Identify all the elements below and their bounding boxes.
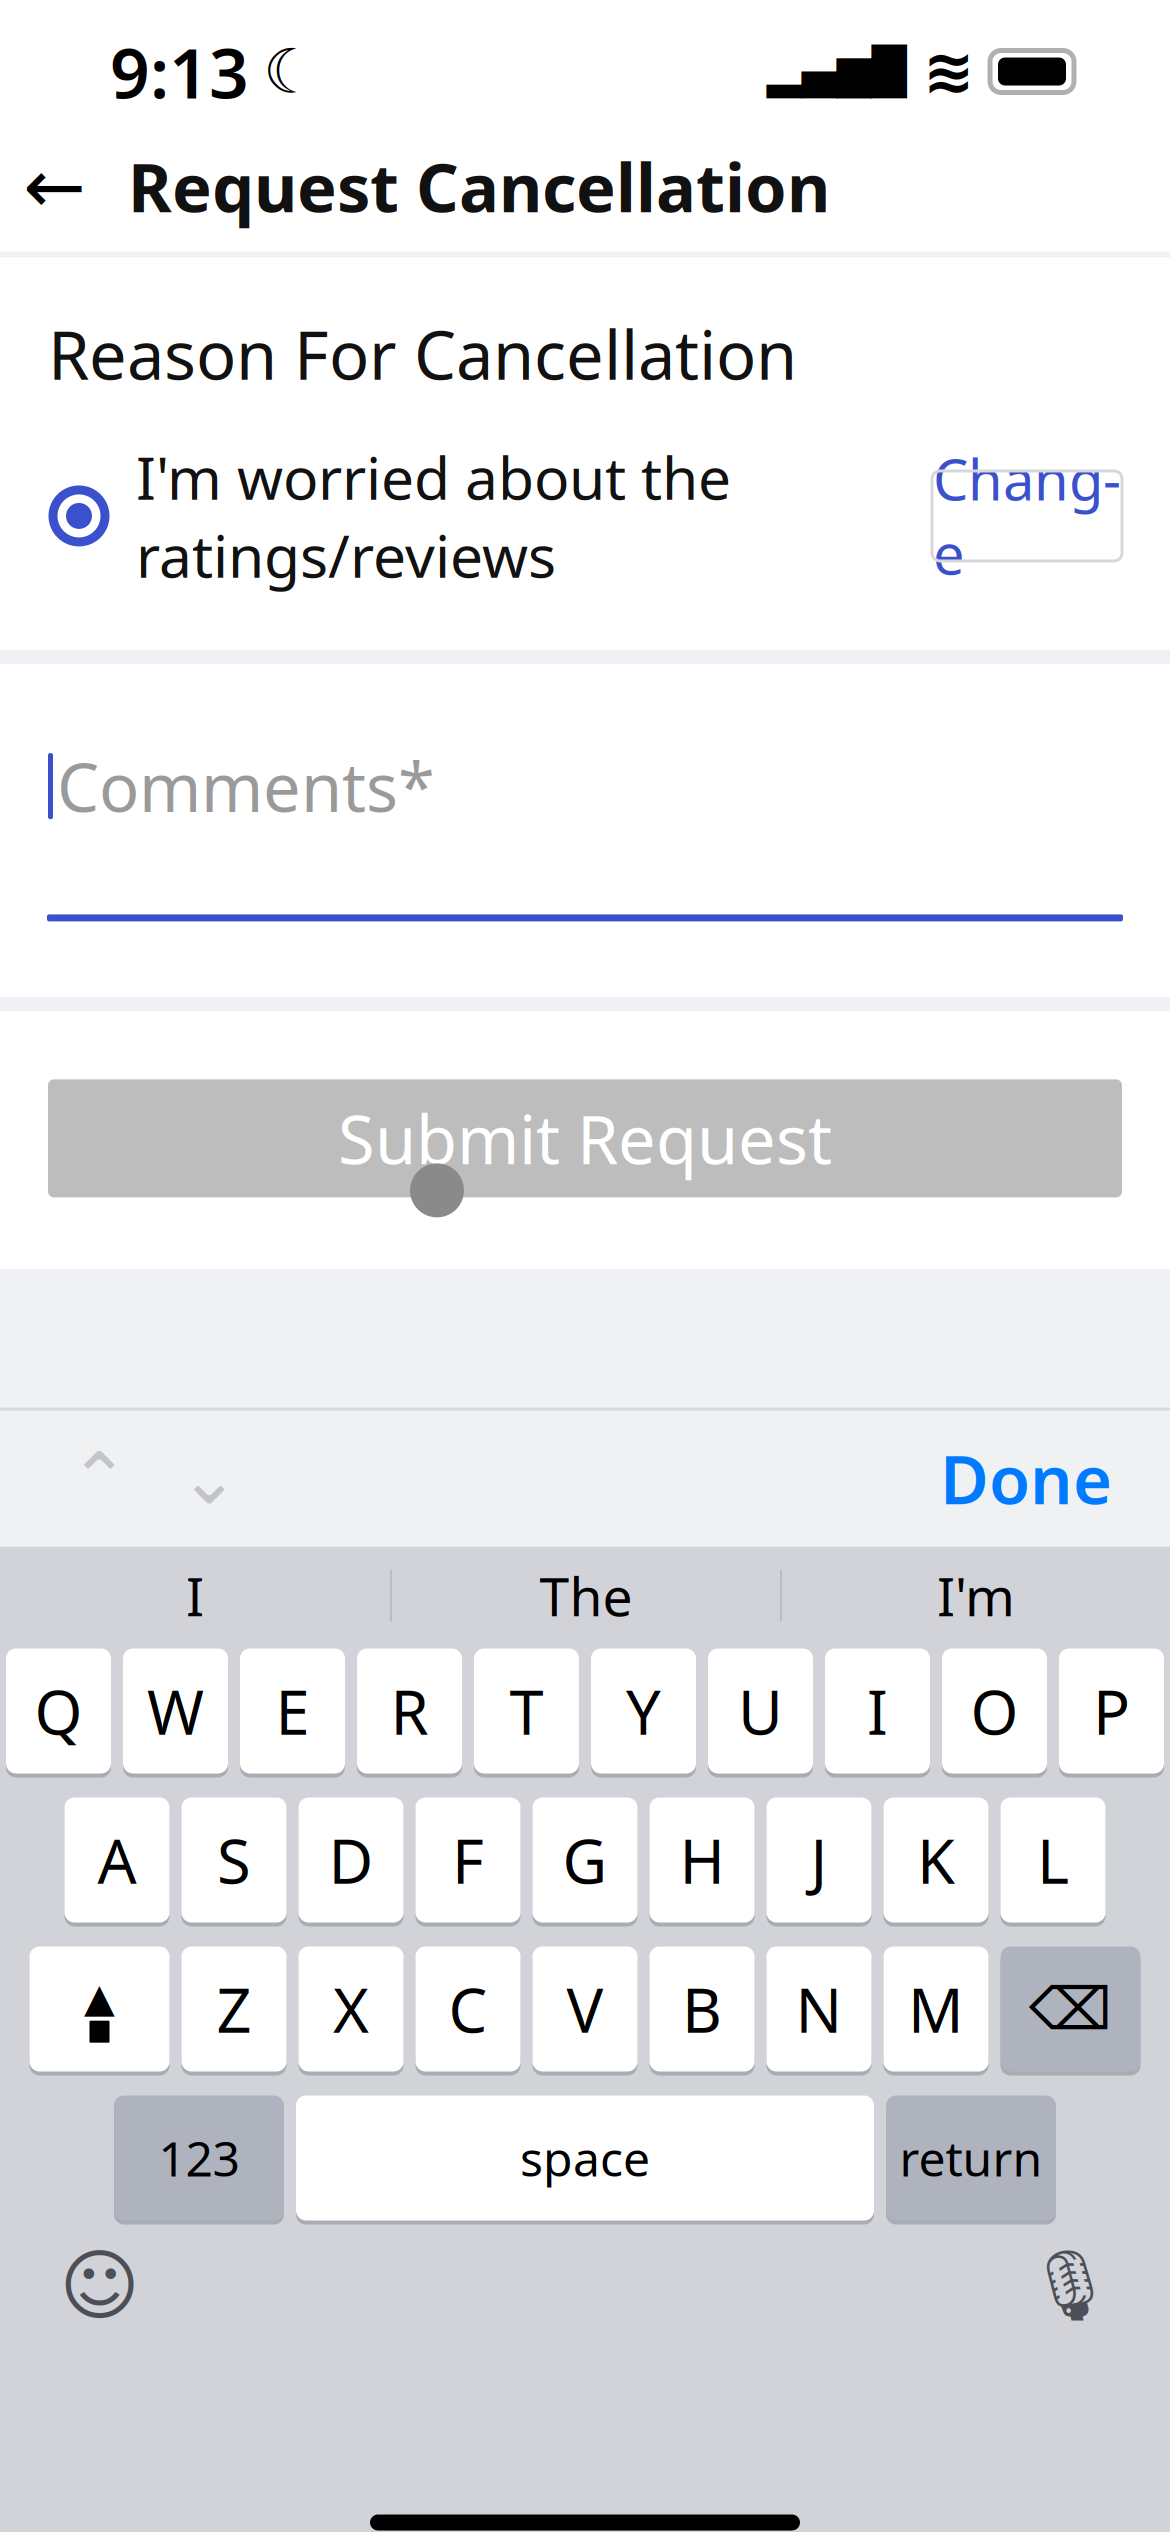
button[interactable]: R <box>357 1646 462 1775</box>
staticText: O <box>970 1670 1018 1752</box>
button[interactable]: S <box>181 1795 286 1924</box>
button[interactable]: O <box>942 1646 1047 1775</box>
staticText: ☾ <box>263 37 318 106</box>
button[interactable]: The <box>392 1548 780 1642</box>
button[interactable]: Change <box>932 471 1122 561</box>
button[interactable]: E <box>240 1646 345 1775</box>
button[interactable]: D <box>298 1795 403 1924</box>
button[interactable]: return <box>886 2093 1056 2222</box>
button[interactable]: Done <box>940 1423 1112 1533</box>
staticText: X <box>333 1968 369 2050</box>
staticText: ▲ <box>84 1975 115 2021</box>
staticText: N <box>795 1968 842 2050</box>
button[interactable]: Q <box>6 1646 111 1775</box>
staticText: S <box>217 1819 251 1901</box>
button[interactable]: Next field <box>154 1423 264 1533</box>
staticText: ← <box>23 144 86 229</box>
staticText: ⌄ <box>179 1438 239 1519</box>
staticText: Comments* <box>57 742 435 830</box>
staticText: C <box>448 1968 487 2050</box>
staticText: Y <box>626 1670 661 1752</box>
button[interactable]: H <box>649 1795 754 1924</box>
staticText: L <box>1037 1819 1069 1901</box>
button[interactable]: Previous field <box>44 1423 154 1533</box>
staticText: 9:13 <box>110 25 249 118</box>
button[interactable]: G <box>532 1795 637 1924</box>
staticText: The <box>539 1560 632 1631</box>
staticText: A <box>97 1819 136 1901</box>
button[interactable]: I <box>0 1548 390 1642</box>
staticText: ☺ <box>59 2242 140 2329</box>
staticText: Q <box>34 1670 82 1752</box>
staticText: ⌫ <box>1029 1976 1112 2042</box>
staticText: B <box>682 1968 722 2050</box>
button[interactable]: K <box>883 1795 988 1924</box>
staticText: space <box>520 2126 650 2190</box>
staticText: W <box>147 1670 204 1752</box>
staticText: Request Cancellation <box>128 142 830 231</box>
button[interactable]: Y <box>591 1646 696 1775</box>
button[interactable]: 123 <box>114 2093 284 2222</box>
button[interactable]: F <box>415 1795 520 1924</box>
staticText: ▂▄▆█ <box>767 46 907 97</box>
button[interactable]: I <box>825 1646 930 1775</box>
staticText: Z <box>216 1968 251 2050</box>
staticText: H <box>679 1819 724 1901</box>
staticText: F <box>452 1819 484 1901</box>
button[interactable]: C <box>415 1944 520 2073</box>
button[interactable]: Back <box>0 131 110 241</box>
staticText: I'm worried about the ratings/reviews <box>136 438 731 594</box>
button[interactable]: X <box>298 1944 403 2073</box>
staticText: 123 <box>158 2126 239 2190</box>
button[interactable]: I'm <box>782 1548 1170 1642</box>
button[interactable]: Z <box>181 1944 286 2073</box>
staticText: Reason For Cancellation <box>48 309 797 398</box>
staticText: I <box>867 1670 888 1752</box>
staticText: J <box>810 1819 827 1901</box>
staticText: T <box>509 1670 543 1752</box>
button[interactable]: L <box>1000 1795 1105 1924</box>
staticText: K <box>917 1819 955 1901</box>
button[interactable]: V <box>532 1944 637 2073</box>
button[interactable]: J <box>766 1795 871 1924</box>
staticText: 🎙 <box>1026 2246 1114 2325</box>
staticText: return <box>899 2126 1042 2190</box>
staticText: V <box>566 1968 603 2050</box>
button[interactable]: P <box>1059 1646 1164 1775</box>
button[interactable]: Emoji <box>40 2235 160 2335</box>
staticText: R <box>390 1670 428 1752</box>
button[interactable]: Submit Request <box>48 1079 1122 1197</box>
staticText: I <box>186 1560 204 1631</box>
button[interactable]: A <box>64 1795 169 1924</box>
staticText: M <box>908 1968 964 2050</box>
button[interactable]: B <box>649 1944 754 2073</box>
button[interactable]: I'm worried about the ratings/reviews <box>48 438 731 594</box>
button[interactable]: T <box>474 1646 579 1775</box>
button[interactable]: W <box>123 1646 228 1775</box>
staticText: P <box>1093 1670 1130 1752</box>
staticText: E <box>275 1670 309 1752</box>
button[interactable]: M <box>883 1944 988 2073</box>
button[interactable]: U <box>708 1646 813 1775</box>
button[interactable]: space <box>296 2093 874 2222</box>
staticText: ⌃ <box>69 1438 129 1519</box>
button[interactable]: Dictation <box>1010 2235 1130 2335</box>
staticText: I'm <box>937 1560 1015 1631</box>
staticText: G <box>562 1819 607 1901</box>
staticText: Change <box>933 442 1121 590</box>
staticText: Submit Request <box>338 1094 832 1183</box>
button[interactable]: Delete <box>1000 1944 1140 2073</box>
button[interactable]: N <box>766 1944 871 2073</box>
button[interactable]: Shift <box>29 1944 169 2073</box>
staticText: D <box>328 1819 373 1901</box>
staticText: ≋ <box>923 37 974 106</box>
staticText: U <box>738 1670 783 1752</box>
staticText: Done <box>940 1434 1112 1523</box>
